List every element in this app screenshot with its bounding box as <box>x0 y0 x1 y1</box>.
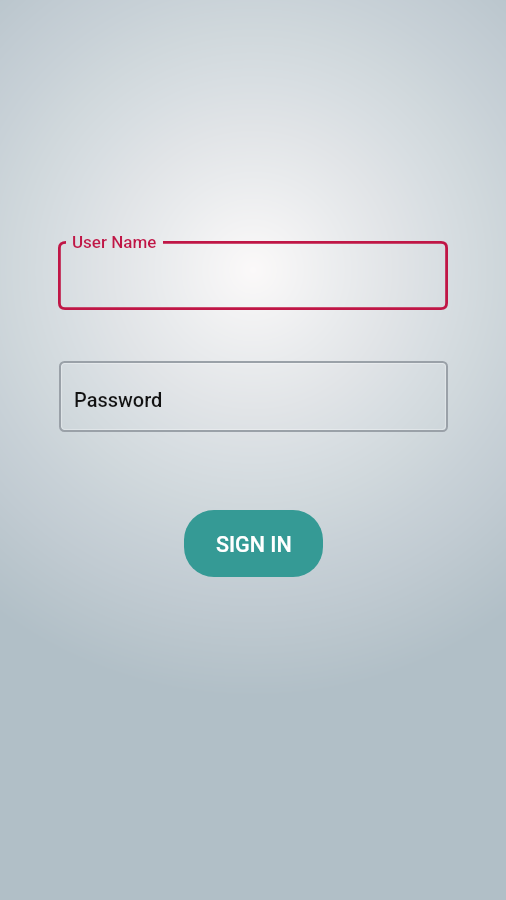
staticText: Password <box>74 388 163 411</box>
staticText: User Name <box>72 232 157 252</box>
button[interactable]: User Name text field <box>58 241 448 310</box>
button[interactable]: Password <box>59 361 448 432</box>
button[interactable]: SIGN IN <box>184 510 323 577</box>
staticText: SIGN IN <box>216 532 292 557</box>
